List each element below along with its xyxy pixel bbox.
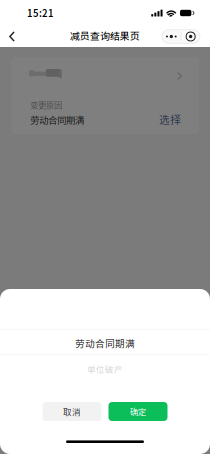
staticText: 单位破产	[87, 363, 123, 375]
staticText: 确定	[130, 405, 146, 417]
button[interactable]: 变更原因	[11, 91, 199, 134]
staticText: 劳动合同期满	[75, 336, 135, 350]
button[interactable]	[11, 57, 199, 91]
staticText: 取消	[63, 405, 81, 418]
staticText: 15:21	[27, 6, 54, 20]
staticText: 变更原因	[30, 99, 62, 111]
button[interactable]: More options and close mini program	[162, 30, 200, 43]
staticText: 减员查询结果页	[70, 28, 140, 43]
button[interactable]: Back	[3, 26, 21, 47]
button[interactable]: 取消	[42, 402, 101, 421]
button[interactable]: 确定	[108, 402, 167, 421]
staticText: 劳动合同期满	[30, 113, 84, 126]
staticText: 选择	[159, 111, 181, 127]
